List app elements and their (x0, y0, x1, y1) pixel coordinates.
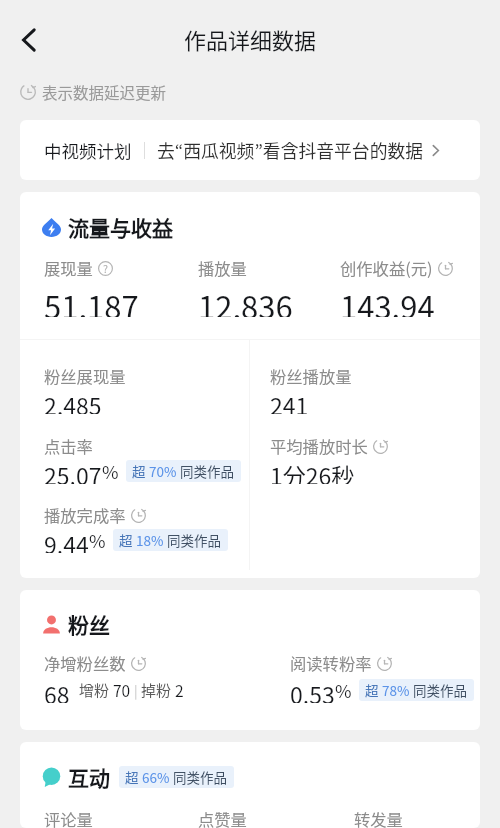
staticText: 70% (149, 461, 177, 481)
staticText: % (89, 527, 106, 553)
staticText: 阅读转粉率 (290, 651, 372, 675)
staticText: 播放完成率 (44, 503, 126, 527)
staticText: 超 (119, 530, 136, 550)
staticText: 创作收益(元) (340, 256, 433, 280)
staticText: 超 (125, 767, 142, 787)
staticText: % (335, 677, 352, 703)
staticText: 流量与收益 (68, 212, 173, 242)
staticText: 粉丝 (68, 609, 110, 639)
staticText: 70 (113, 679, 131, 701)
staticText: 同类作品 (177, 461, 235, 481)
staticText: 68 (44, 677, 70, 703)
staticText: 掉粉 (141, 679, 175, 701)
staticText: 66% (142, 767, 170, 787)
staticText: 点击率 (44, 434, 93, 458)
staticText: 同类作品 (170, 767, 228, 787)
staticText: 增粉 (79, 679, 113, 701)
button[interactable]: Back (5, 16, 53, 64)
staticText: 表示数据延迟更新 (42, 81, 167, 103)
staticText: 241 (270, 388, 309, 414)
staticText: 2,485 (44, 388, 102, 414)
staticText: 78% (382, 680, 410, 700)
staticText: 转发量 (354, 807, 403, 828)
staticText: 同类作品 (164, 530, 222, 550)
staticText: 互动 (68, 762, 110, 792)
staticText: ? (103, 261, 108, 276)
button[interactable]: 中视频计划 (20, 120, 480, 180)
staticText: 9.44 (44, 527, 89, 553)
staticText: 净增粉丝数 (44, 651, 126, 675)
staticText: 评论量 (44, 807, 93, 828)
staticText: % (102, 458, 119, 484)
staticText: 播放量 (198, 256, 247, 280)
staticText: 平均播放时长 (270, 434, 368, 458)
staticText: 25.07 (44, 458, 102, 484)
staticText: | (131, 681, 141, 700)
staticText: 1分26秒 (270, 458, 355, 484)
staticText: 中视频计划 (44, 138, 132, 163)
staticText: 粉丝展现量 (44, 364, 126, 388)
staticText: 作品详细数据 (184, 23, 317, 53)
staticText: 同类作品 (410, 680, 468, 700)
staticText: 12,836 (198, 283, 293, 317)
staticText: 51,187 (44, 283, 139, 317)
staticText: 点赞量 (198, 807, 247, 828)
staticText: 0.53 (290, 677, 335, 703)
staticText: 18% (136, 530, 164, 550)
staticText: 超 (132, 461, 149, 481)
staticText: 超 (365, 680, 382, 700)
staticText: 粉丝播放量 (270, 364, 352, 388)
staticText: 展现量 (44, 256, 93, 280)
staticText: 2 (175, 679, 184, 701)
staticText: 去“西瓜视频”看含抖音平台的数据 (157, 137, 424, 163)
staticText: 143.94 (340, 283, 435, 317)
